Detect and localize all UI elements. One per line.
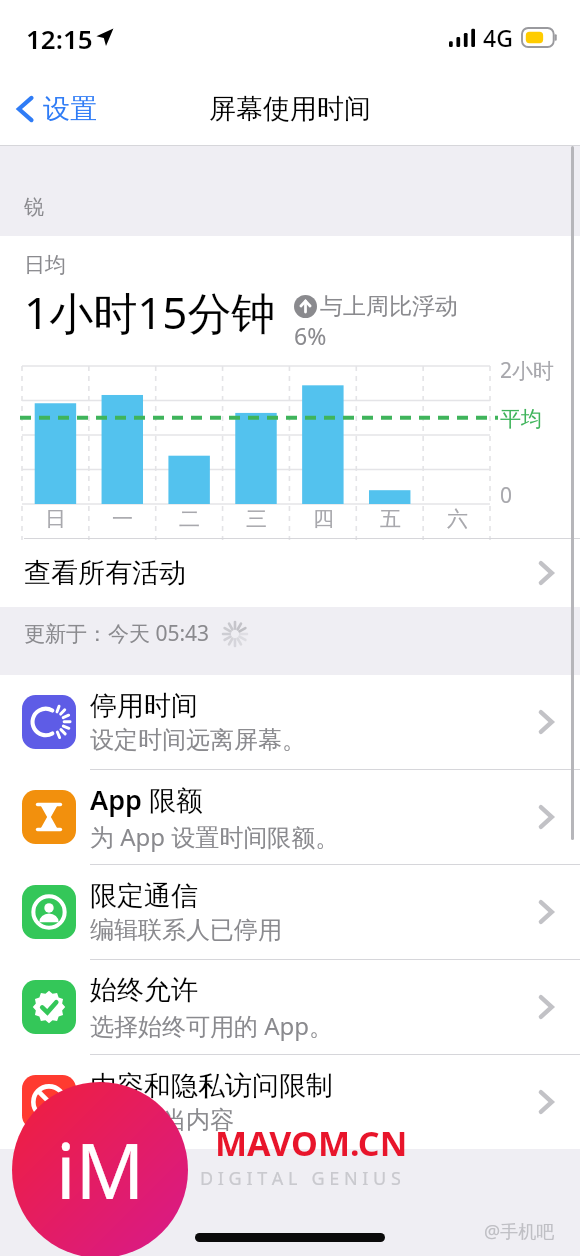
button[interactable]: 始终允许 — [0, 960, 580, 1054]
staticText: 二 — [179, 506, 200, 532]
staticText: 12:15 — [26, 21, 93, 56]
staticText: 查看所有活动 — [24, 556, 186, 590]
staticText: 四 — [313, 506, 334, 532]
staticText: 锐 — [24, 195, 44, 220]
staticText: 与上周比浮动 — [320, 292, 458, 321]
staticText: D I G I T A L G E N I U S — [200, 1166, 401, 1191]
staticText: 三 — [246, 506, 267, 532]
staticText: 6% — [294, 320, 327, 351]
staticText: MAVOM.CN — [215, 1120, 408, 1166]
staticText: 设置 — [43, 92, 97, 126]
staticText: 一 — [112, 506, 133, 532]
staticText: 平均 — [500, 406, 542, 432]
staticText: 屏幕使用时间 — [209, 92, 371, 126]
staticText: 设定时间远离屏幕。 — [90, 725, 306, 755]
button[interactable]: 设置 — [0, 82, 111, 136]
staticText: 4G — [483, 22, 513, 53]
staticText: 编辑联系人已停用 — [90, 915, 282, 945]
staticText: 六 — [447, 506, 468, 532]
staticText: 限定通信 — [90, 879, 198, 913]
staticText: App 限额 — [90, 781, 203, 818]
staticText: 始终允许 — [90, 973, 198, 1007]
button[interactable]: 停用时间 — [0, 675, 580, 769]
button[interactable]: 限定通信 — [0, 865, 580, 959]
staticText: @手机吧 — [484, 1219, 555, 1244]
staticText: 日 — [45, 506, 66, 532]
staticText: 阻止不当内容 — [90, 1105, 234, 1135]
staticText: 2小时 — [500, 356, 555, 385]
staticText: 五 — [380, 506, 401, 532]
button[interactable]: 查看所有活动 — [0, 539, 580, 607]
staticText: 内容和隐私访问限制 — [90, 1069, 333, 1103]
staticText: 1小时15分钟 — [24, 282, 276, 342]
button[interactable]: 内容和隐私访问限制 — [0, 1055, 580, 1149]
staticText: 停用时间 — [90, 689, 198, 723]
staticText: 0 — [500, 481, 513, 510]
staticText: 为 App 设置时间限额。 — [90, 820, 340, 853]
staticText: 日均 — [24, 252, 66, 278]
staticText: 选择始终可用的 App。 — [90, 1009, 334, 1042]
staticText: 更新于：今天 05:43 — [24, 619, 210, 648]
staticText: iM — [56, 1118, 145, 1222]
button[interactable]: App 限额 — [0, 770, 580, 864]
